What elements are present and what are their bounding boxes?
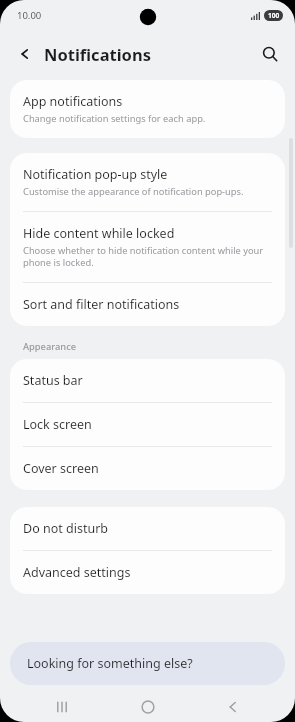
staticText: Do not disturb <box>23 520 108 537</box>
staticText: Cover screen <box>23 460 99 477</box>
button[interactable]: Sort and filter notifications <box>10 283 285 326</box>
staticText: Change notification settings for each ap… <box>23 112 206 125</box>
staticText: Notification pop-up style <box>23 166 168 183</box>
button[interactable]: Back <box>9 38 41 70</box>
button[interactable]: Home <box>125 692 171 722</box>
button[interactable]: Search <box>254 38 286 70</box>
button[interactable]: Lock screen <box>10 403 285 446</box>
staticText: Lock screen <box>23 416 92 433</box>
button[interactable]: Hide content while locked <box>10 212 285 282</box>
button[interactable]: Cover screen <box>10 447 285 490</box>
button[interactable]: Do not disturb <box>10 507 285 550</box>
staticText: Customise the appearance of notification… <box>23 185 244 198</box>
button[interactable]: App notifications <box>10 80 285 138</box>
button[interactable]: Back <box>210 692 256 722</box>
staticText: Sort and filter notifications <box>23 296 180 313</box>
staticText: Choose whether to hide notification cont… <box>23 244 270 269</box>
staticText: App notifications <box>23 93 123 110</box>
button[interactable]: Notification pop-up style <box>10 153 285 211</box>
staticText: 100 <box>268 11 280 20</box>
button[interactable]: Advanced settings <box>10 551 285 594</box>
staticText: Looking for something else? <box>27 655 193 672</box>
staticText: Advanced settings <box>23 564 131 581</box>
staticText: Notifications <box>44 43 151 65</box>
button[interactable]: Recents <box>39 692 85 722</box>
staticText: 10.00 <box>17 9 42 22</box>
button[interactable]: Status bar <box>10 359 285 402</box>
staticText: Hide content while locked <box>23 225 175 242</box>
staticText: Appearance <box>23 340 77 353</box>
staticText: Status bar <box>23 372 83 389</box>
button[interactable]: Looking for something else? <box>10 642 285 685</box>
